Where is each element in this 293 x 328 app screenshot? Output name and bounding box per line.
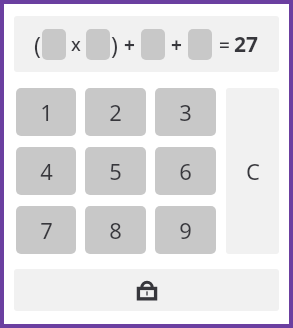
- button[interactable]: 5: [85, 147, 146, 195]
- staticText: 1: [40, 97, 53, 127]
- staticText: (: [34, 29, 41, 60]
- button[interactable]: 3: [155, 88, 216, 136]
- staticText: ): [111, 29, 118, 60]
- button[interactable]: Blank slot: [42, 29, 66, 60]
- staticText: 4: [40, 156, 53, 186]
- button[interactable]: 1: [16, 88, 76, 136]
- staticText: 9: [179, 215, 192, 245]
- staticText: +: [124, 32, 135, 58]
- button[interactable]: 2: [85, 88, 146, 136]
- button[interactable]: Lock: [14, 269, 279, 311]
- button[interactable]: 8: [85, 206, 146, 254]
- button[interactable]: 4: [16, 147, 76, 195]
- staticText: 6: [179, 156, 192, 186]
- staticText: =: [219, 32, 230, 58]
- staticText: 8: [109, 215, 122, 245]
- button[interactable]: Blank slot: [141, 29, 165, 60]
- staticText: +: [171, 32, 182, 58]
- button[interactable]: Blank slot: [86, 29, 110, 60]
- staticText: x: [71, 32, 81, 57]
- button[interactable]: 6: [155, 147, 216, 195]
- staticText: 7: [40, 215, 53, 245]
- button[interactable]: 9: [155, 206, 216, 254]
- staticText: C: [246, 156, 260, 186]
- button[interactable]: C: [226, 88, 279, 254]
- staticText: 2: [109, 97, 122, 127]
- staticText: 5: [109, 156, 122, 186]
- staticText: 3: [179, 97, 192, 127]
- staticText: 27: [234, 30, 259, 59]
- button[interactable]: Blank slot: [188, 29, 212, 60]
- button[interactable]: 7: [16, 206, 76, 254]
